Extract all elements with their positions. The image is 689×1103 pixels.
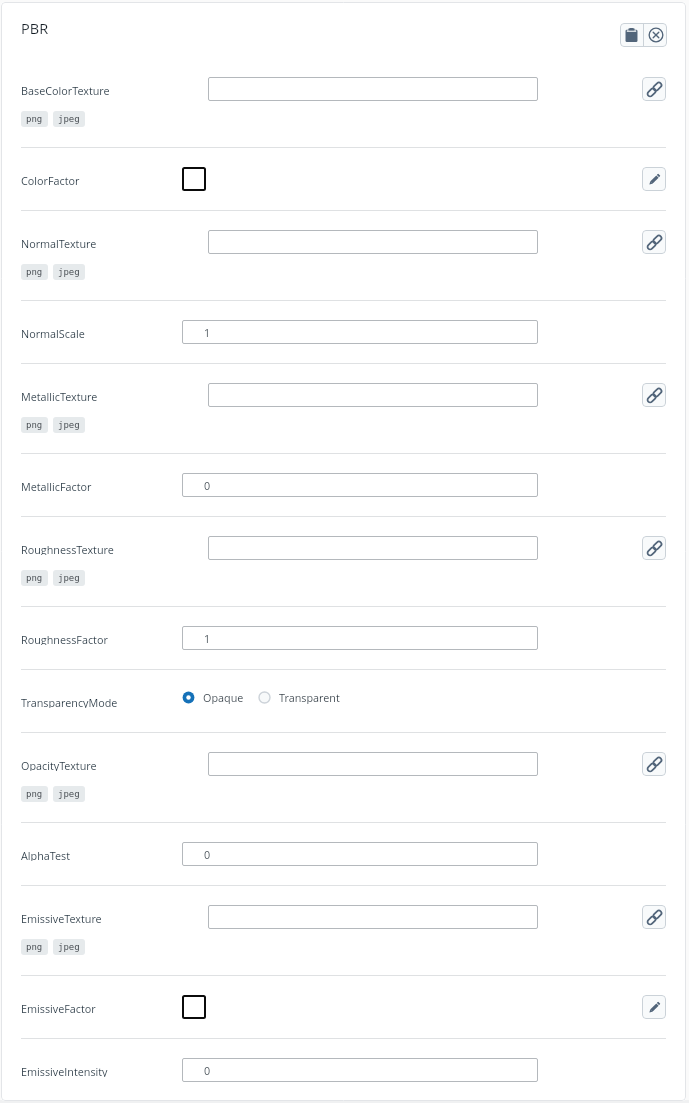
button[interactable]: 0 xyxy=(182,1058,538,1082)
staticText: NormalTexture xyxy=(21,236,97,249)
staticText: 1 xyxy=(204,325,211,340)
button[interactable]: Edit colour xyxy=(642,995,666,1019)
staticText: Transparent xyxy=(279,690,340,704)
button[interactable]: Close xyxy=(644,23,667,47)
button[interactable]: 0 xyxy=(182,473,538,497)
staticText: png xyxy=(26,789,43,799)
button[interactable]: jpeg xyxy=(53,417,85,433)
button[interactable]: jpeg xyxy=(53,939,85,955)
button[interactable]: Copy xyxy=(620,23,643,47)
staticText: jpeg xyxy=(58,114,80,124)
button[interactable]: png xyxy=(21,111,48,127)
staticText: jpeg xyxy=(58,420,80,430)
staticText: Opaque xyxy=(203,690,244,704)
button[interactable] xyxy=(208,77,538,101)
staticText: PBR xyxy=(21,19,49,34)
staticText: png xyxy=(26,114,43,124)
button[interactable] xyxy=(208,905,538,929)
button[interactable]: 1 xyxy=(182,320,538,344)
button[interactable]: jpeg xyxy=(53,111,85,127)
staticText: jpeg xyxy=(58,267,80,277)
button[interactable] xyxy=(208,752,538,776)
staticText: jpeg xyxy=(58,942,80,952)
staticText: 1 xyxy=(204,631,211,646)
staticText: OpacityTexture xyxy=(21,758,97,771)
staticText: ColorFactor xyxy=(21,173,80,186)
staticText: NormalScale xyxy=(21,326,85,339)
staticText: jpeg xyxy=(58,789,80,799)
staticText: TransparencyMode xyxy=(21,695,118,708)
button[interactable]: Opaque xyxy=(182,690,244,704)
staticText: BaseColorTexture xyxy=(21,83,110,96)
button[interactable]: Link texture xyxy=(642,536,666,560)
button[interactable]: 0 xyxy=(182,842,538,866)
button[interactable]: jpeg xyxy=(53,264,85,280)
staticText: png xyxy=(26,573,43,583)
staticText: png xyxy=(26,420,43,430)
button[interactable]: Edit colour xyxy=(642,167,666,191)
button[interactable]: 1 xyxy=(182,626,538,650)
button[interactable]: Colour swatch xyxy=(182,167,206,191)
button[interactable]: png xyxy=(21,939,48,955)
button[interactable] xyxy=(208,383,538,407)
button[interactable]: png xyxy=(21,570,48,586)
button[interactable]: Colour swatch xyxy=(182,995,206,1019)
staticText: png xyxy=(26,267,43,277)
staticText: jpeg xyxy=(58,573,80,583)
button[interactable]: jpeg xyxy=(53,786,85,802)
staticText: 0 xyxy=(204,478,211,493)
staticText: AlphaTest xyxy=(21,848,71,861)
button[interactable]: png xyxy=(21,264,48,280)
button[interactable]: Transparent xyxy=(258,690,340,704)
button[interactable]: png xyxy=(21,786,48,802)
staticText: EmissiveTexture xyxy=(21,911,102,924)
button[interactable]: Link texture xyxy=(642,905,666,929)
staticText: 0 xyxy=(204,1063,211,1078)
staticText: EmissiveFactor xyxy=(21,1001,96,1014)
button[interactable] xyxy=(208,230,538,254)
button[interactable]: Link texture xyxy=(642,230,666,254)
button[interactable]: png xyxy=(21,417,48,433)
staticText: EmissiveIntensity xyxy=(21,1064,108,1077)
staticText: 0 xyxy=(204,847,211,862)
staticText: png xyxy=(26,942,43,952)
button[interactable]: jpeg xyxy=(53,570,85,586)
staticText: MetallicTexture xyxy=(21,389,98,402)
staticText: MetallicFactor xyxy=(21,479,92,492)
button[interactable] xyxy=(208,536,538,560)
button[interactable]: Link texture xyxy=(642,77,666,101)
button[interactable]: Link texture xyxy=(642,752,666,776)
button[interactable]: Link texture xyxy=(642,383,666,407)
staticText: RoughnessFactor xyxy=(21,632,108,645)
staticText: RoughnessTexture xyxy=(21,542,114,555)
